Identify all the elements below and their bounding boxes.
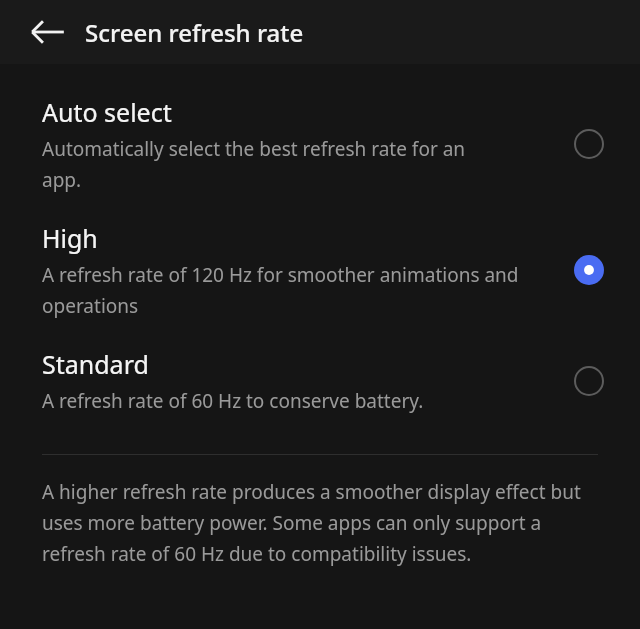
button[interactable]: High — [0, 221, 640, 319]
staticText: Standard — [42, 347, 149, 381]
button[interactable]: Back — [24, 8, 72, 56]
staticText: High — [42, 221, 98, 255]
staticText: A refresh rate of 120 Hz for smoother an… — [42, 262, 522, 319]
staticText: Automatically select the best refresh ra… — [42, 136, 502, 193]
staticText: Screen refresh rate — [85, 16, 304, 49]
staticText: Auto select — [42, 95, 172, 129]
staticText: A higher refresh rate produces a smoothe… — [42, 479, 606, 567]
button[interactable]: Standard — [0, 347, 640, 414]
button[interactable]: Auto select — [0, 95, 640, 193]
staticText: A refresh rate of 60 Hz to conserve batt… — [42, 388, 522, 414]
